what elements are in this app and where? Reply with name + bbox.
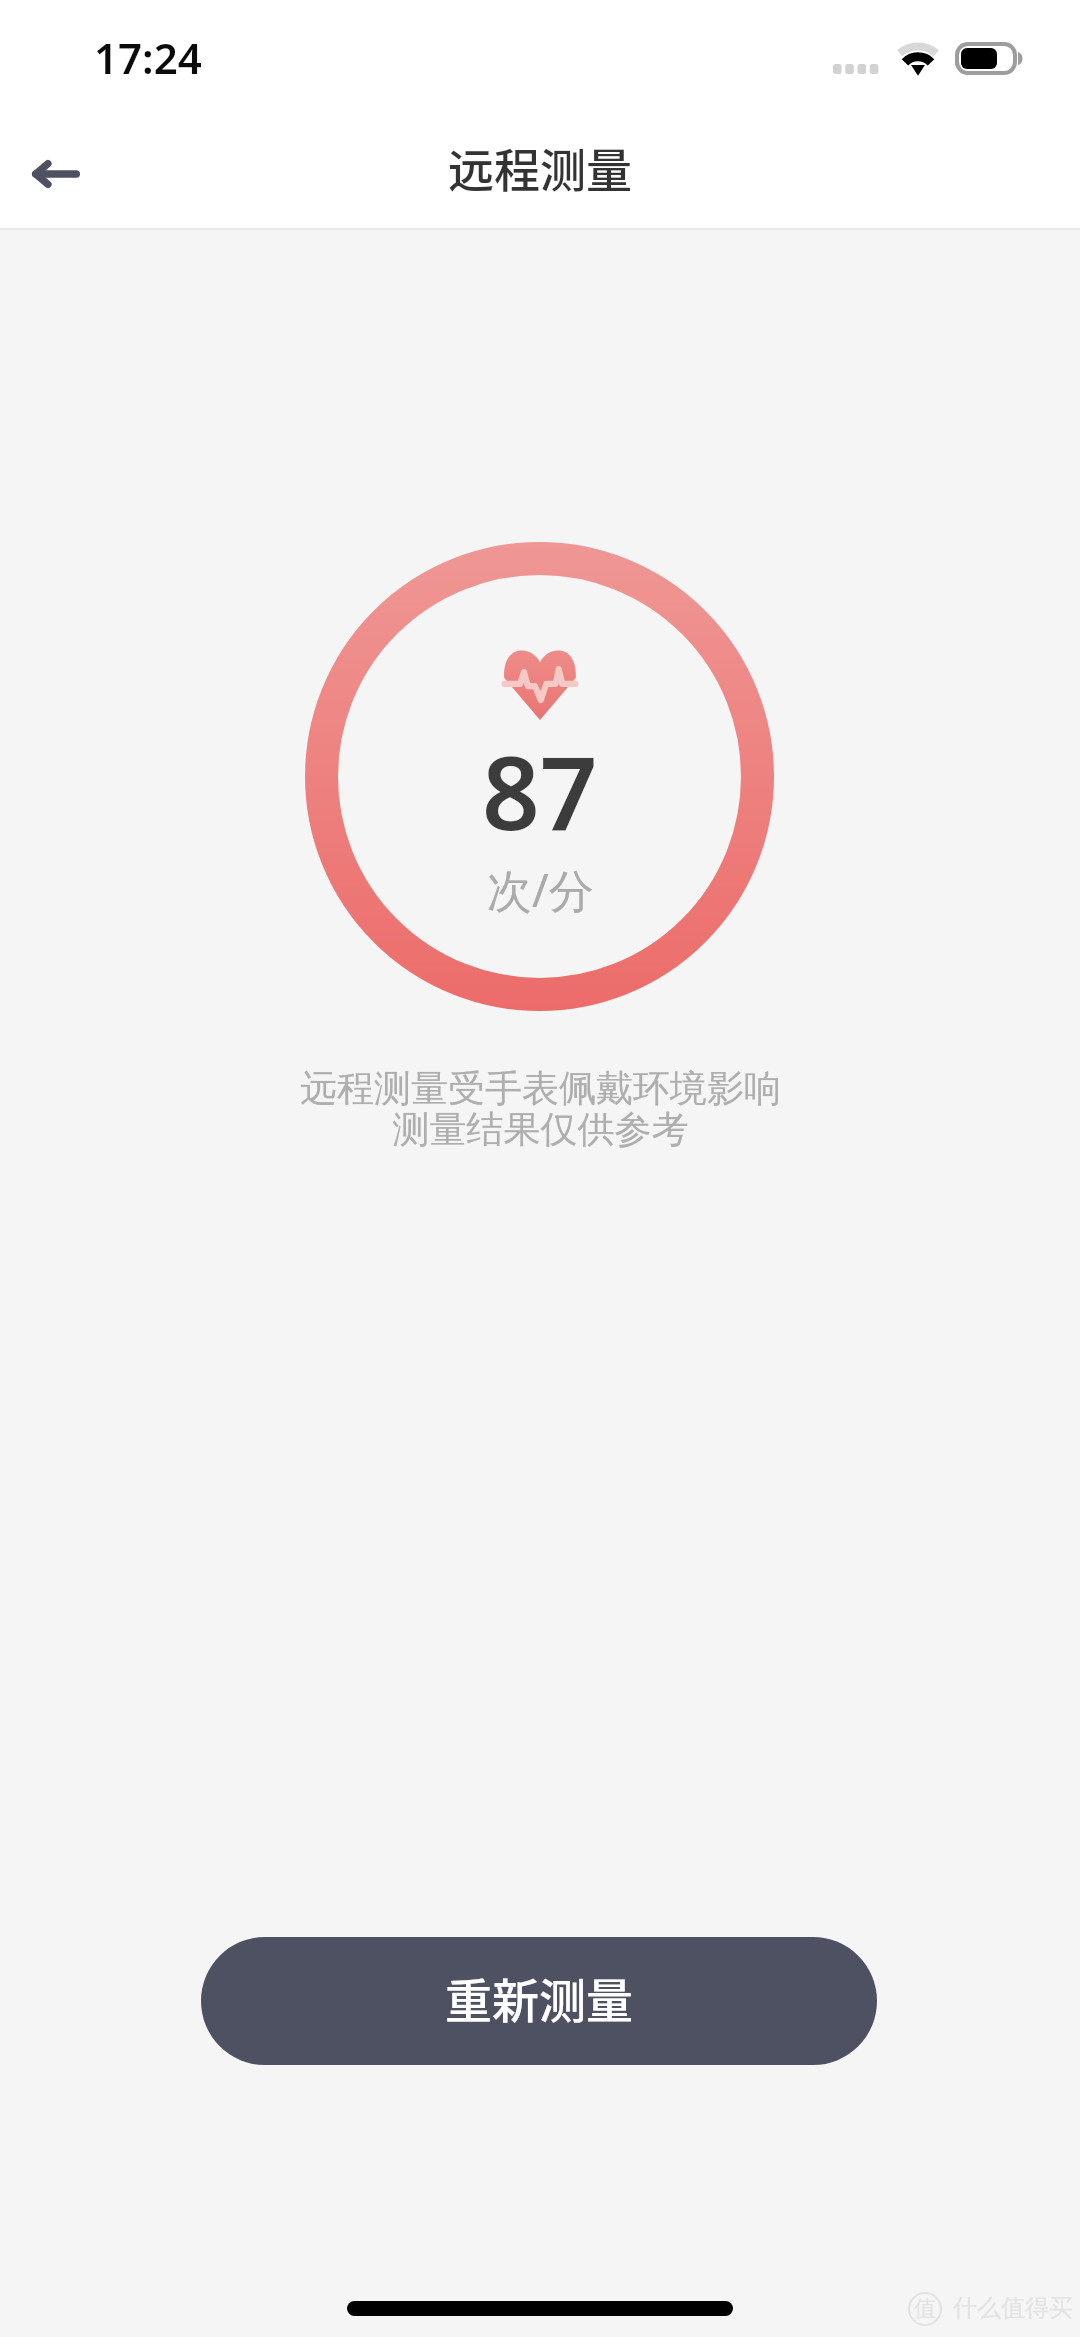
staticText: 87 xyxy=(482,722,598,860)
staticText: 次/分 xyxy=(487,859,594,920)
staticText: 值 xyxy=(914,2295,936,2323)
staticText: 远程测量受手表佩戴环境影响 测量结果仅供参考 xyxy=(300,1065,781,1153)
staticText: 远程测量 xyxy=(448,134,632,201)
staticText: 什么值得买 xyxy=(953,2293,1073,2323)
button[interactable]: 重新测量 xyxy=(201,1937,877,2065)
button[interactable]: Back xyxy=(0,118,112,230)
staticText: 17:24 xyxy=(94,29,202,86)
staticText: 重新测量 xyxy=(445,1963,633,2031)
